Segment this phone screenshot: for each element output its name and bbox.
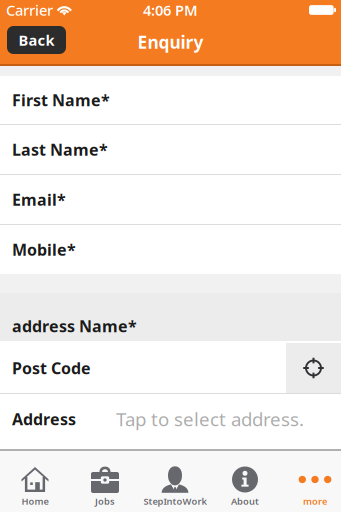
button[interactable]: Last Name* bbox=[0, 125, 341, 174]
button[interactable]: Back bbox=[7, 26, 66, 54]
staticText: Post Code bbox=[12, 357, 91, 379]
button[interactable]: Mobile* bbox=[0, 225, 341, 274]
staticText: Carrier bbox=[6, 0, 53, 20]
staticText: Address bbox=[12, 408, 76, 430]
button[interactable]: Jobs bbox=[70, 451, 140, 512]
button[interactable]: Address bbox=[0, 394, 341, 444]
button[interactable]: Email* bbox=[0, 175, 341, 224]
staticText: About bbox=[231, 495, 259, 507]
staticText: more bbox=[303, 495, 327, 507]
staticText: Back bbox=[18, 30, 54, 50]
staticText: StepIntoWork bbox=[143, 495, 206, 507]
staticText: Mobile* bbox=[12, 239, 76, 260]
staticText: Enquiry bbox=[137, 30, 203, 53]
staticText: First Name* bbox=[12, 89, 110, 111]
staticText: Email* bbox=[12, 189, 66, 210]
button[interactable]: About bbox=[210, 451, 280, 512]
button[interactable]: Home bbox=[0, 451, 70, 512]
staticText: Jobs bbox=[95, 495, 115, 507]
button[interactable]: First Name* bbox=[0, 76, 341, 124]
staticText: 4:06 PM bbox=[143, 0, 198, 20]
button[interactable]: StepIntoWork bbox=[140, 451, 210, 512]
staticText: Home bbox=[21, 495, 48, 507]
button[interactable]: Use current location bbox=[286, 343, 341, 393]
staticText: Tap to select address. bbox=[116, 407, 304, 431]
staticText: address Name* bbox=[12, 315, 137, 337]
staticText: Last Name* bbox=[12, 139, 108, 160]
button[interactable]: more bbox=[280, 451, 341, 512]
